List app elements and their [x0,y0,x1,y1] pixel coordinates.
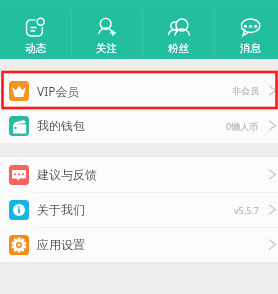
staticText: 0懒人币 [226,120,259,132]
button[interactable]: 消息 [215,0,278,59]
button[interactable]: 我的钱包 [0,108,278,143]
button[interactable]: 建议与反馈 [0,157,278,192]
staticText: 关于我们 [37,202,85,217]
staticText: 非会员 [232,85,259,96]
button[interactable]: 关于我们 [0,192,278,227]
button[interactable]: 关注 [71,0,142,59]
staticText: v5.5.7 [234,204,259,216]
staticText: 我的钱包 [37,118,85,133]
staticText: 建议与反馈 [37,167,97,182]
button[interactable]: 应用设置 [0,227,278,262]
button[interactable]: 动态 [0,0,71,59]
button[interactable]: VIP会员 [0,73,278,108]
button[interactable]: 粉丝 [143,0,214,59]
staticText: 动态 [25,42,46,55]
staticText: VIP会员 [37,83,80,99]
staticText: 消息 [240,42,261,55]
staticText: 粉丝 [168,42,189,55]
staticText: 应用设置 [37,237,85,252]
staticText: 关注 [96,42,117,55]
